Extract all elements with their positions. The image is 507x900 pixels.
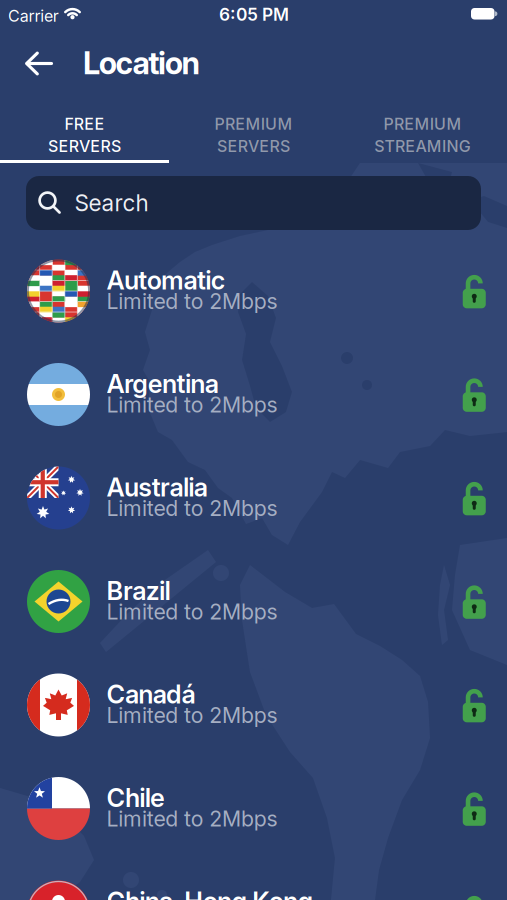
staticText: China, Hong Kong bbox=[106, 886, 313, 900]
button[interactable]: Back bbox=[15, 41, 63, 85]
button[interactable]: PREMIUM bbox=[169, 106, 338, 164]
staticText: Chile bbox=[106, 783, 165, 813]
staticText: Limited to 2Mbps bbox=[106, 289, 277, 314]
button[interactable]: Chile bbox=[0, 757, 507, 860]
staticText: Search bbox=[74, 190, 148, 216]
staticText: Argentina bbox=[106, 369, 219, 399]
button[interactable]: Argentina bbox=[0, 343, 507, 446]
button[interactable]: Canadá bbox=[0, 653, 507, 757]
staticText: PREMIUM bbox=[215, 114, 292, 133]
staticText: Location bbox=[83, 45, 201, 81]
button[interactable]: Australia bbox=[0, 446, 507, 550]
staticText: FREE bbox=[65, 114, 104, 133]
staticText: Limited to 2Mbps bbox=[106, 599, 277, 624]
staticText: Limited to 2Mbps bbox=[106, 392, 277, 417]
staticText: SERVERS bbox=[217, 137, 290, 156]
button[interactable]: PREMIUM bbox=[338, 106, 507, 164]
button[interactable]: China, Hong Kong bbox=[0, 860, 507, 900]
staticText: Australia bbox=[106, 472, 208, 502]
staticText: Limited to 2Mbps bbox=[106, 496, 277, 521]
staticText: Limited to 2Mbps bbox=[106, 806, 277, 831]
button[interactable]: Search bbox=[26, 176, 481, 230]
staticText: Limited to 2Mbps bbox=[106, 703, 277, 728]
button[interactable]: Brazil bbox=[0, 550, 507, 653]
staticText: PREMIUM bbox=[384, 114, 461, 133]
button[interactable]: FREE bbox=[0, 106, 169, 164]
staticText: STREAMING bbox=[374, 137, 471, 156]
staticText: Carrier bbox=[8, 6, 59, 25]
staticText: Automatic bbox=[106, 265, 225, 295]
staticText: SERVERS bbox=[48, 137, 121, 156]
staticText: 6:05 PM bbox=[219, 4, 289, 25]
staticText: Canadá bbox=[106, 679, 195, 709]
staticText: Brazil bbox=[106, 576, 170, 606]
button[interactable]: Automatic bbox=[0, 239, 507, 343]
